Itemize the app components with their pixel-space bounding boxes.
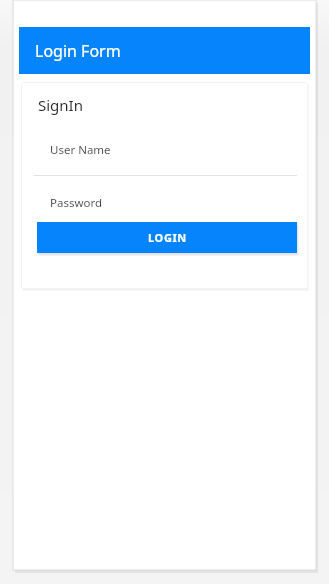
staticText: Password [50,195,103,211]
staticText: User Name [50,142,111,158]
staticText: LOGIN [148,230,187,245]
button[interactable]: LOGIN [37,222,297,253]
staticText: SignIn [38,95,83,115]
button[interactable]: User Name [21,142,308,175]
staticText: Login Form [35,40,121,62]
button[interactable]: Password [21,195,308,217]
